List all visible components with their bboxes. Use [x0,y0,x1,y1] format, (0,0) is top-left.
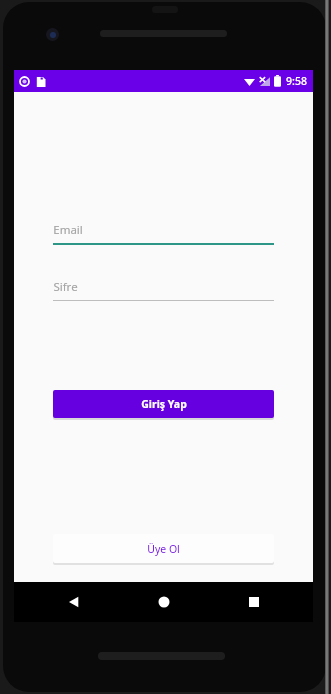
staticText: Email [53,222,83,238]
button[interactable]: Email [53,220,274,240]
button[interactable]: Recent apps [209,582,299,622]
button[interactable]: Sifre [53,277,274,297]
button[interactable]: Giriş Yap [53,390,274,418]
staticText: 9:58 [286,74,307,88]
staticText: Giriş Yap [141,397,187,411]
button[interactable]: Home [119,582,209,622]
staticText: Sifre [53,279,78,295]
button[interactable]: Back [28,582,119,622]
button[interactable]: Üye Ol [53,534,274,563]
staticText: Üye Ol [147,542,180,556]
